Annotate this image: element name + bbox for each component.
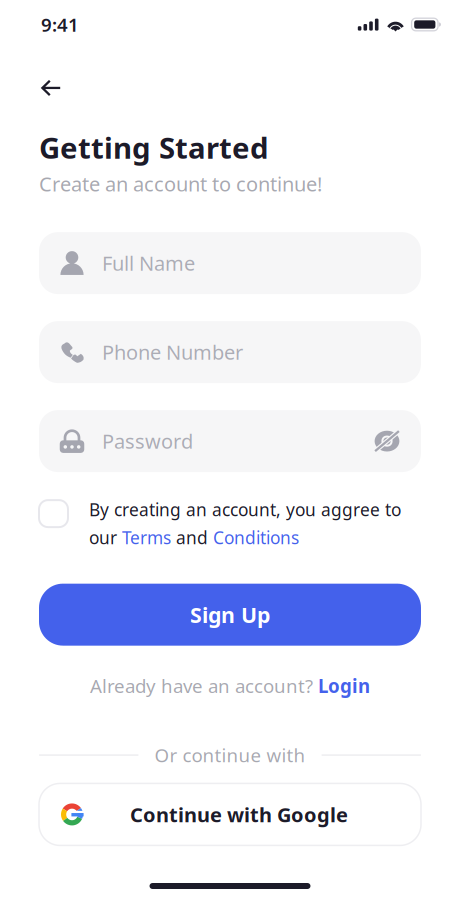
staticText: Terms <box>122 526 171 549</box>
staticText: Password <box>102 428 193 454</box>
staticText: By creating an account, you aggree to <box>89 498 401 521</box>
staticText: Conditions <box>213 526 299 549</box>
staticText: 9:41 <box>41 12 79 37</box>
button[interactable]: Already have an account? <box>0 671 460 701</box>
staticText: Or continue with <box>154 743 305 767</box>
staticText: Create an account to continue! <box>39 171 322 197</box>
staticText: Continue with Google <box>130 801 348 828</box>
staticText: Already have an account? <box>90 673 318 698</box>
staticText: Phone Number <box>102 339 243 365</box>
button[interactable]: Back <box>0 68 87 108</box>
button[interactable]: By creating an account, you aggree to <box>0 498 460 549</box>
staticText: Login <box>318 673 370 698</box>
staticText: our <box>89 526 122 549</box>
staticText: and <box>171 526 213 549</box>
staticText: Full Name <box>102 250 195 276</box>
button[interactable]: Sign Up <box>0 584 460 646</box>
staticText: Sign Up <box>190 600 270 629</box>
staticText: Getting Started <box>39 128 269 167</box>
button[interactable]: Continue with Google <box>0 783 460 845</box>
